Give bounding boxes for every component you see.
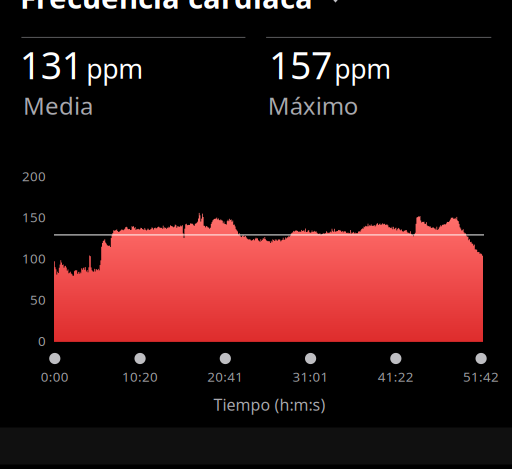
staticText: ppm [86, 51, 143, 86]
staticText: Máximo [268, 89, 359, 121]
staticText: ppm [334, 51, 391, 86]
staticText: 200 [22, 167, 46, 185]
staticText: 51:42 [463, 368, 499, 385]
button[interactable]: Frecuencia cardíaca [20, 0, 345, 11]
staticText: 150 [22, 208, 46, 226]
staticText: 0 [38, 332, 46, 350]
staticText: 50 [30, 291, 46, 308]
staticText: 157 [269, 40, 332, 90]
staticText: Frecuencia cardíaca [20, 0, 313, 17]
staticText: 10:20 [122, 368, 158, 385]
staticText: 0:00 [41, 368, 69, 385]
staticText: 20:41 [207, 368, 243, 385]
staticText: Tiempo (h:m:s) [213, 394, 325, 415]
staticText: 100 [22, 249, 46, 267]
staticText: 41:22 [378, 368, 414, 385]
staticText: 131 [20, 40, 83, 90]
staticText: 31:01 [293, 368, 329, 385]
staticText: Media [23, 89, 93, 121]
